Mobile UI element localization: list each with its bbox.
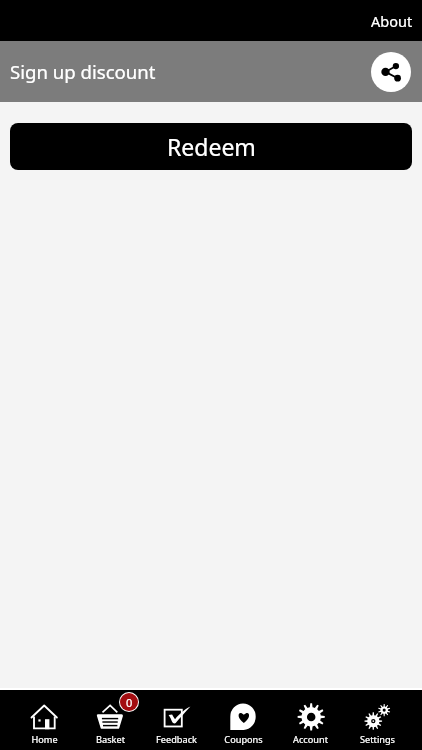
button[interactable]: Share bbox=[371, 52, 411, 92]
staticText: Coupons bbox=[224, 733, 263, 746]
button[interactable]: About bbox=[362, 2, 422, 40]
button[interactable]: Account bbox=[277, 690, 344, 750]
staticText: Redeem bbox=[167, 131, 256, 162]
button[interactable]: Feedback bbox=[143, 690, 210, 750]
staticText: Settings bbox=[360, 733, 395, 746]
staticText: 0 bbox=[126, 695, 133, 710]
staticText: About bbox=[371, 11, 413, 31]
button[interactable]: Home bbox=[11, 690, 77, 750]
staticText: Sign up discount bbox=[10, 59, 156, 84]
staticText: Home bbox=[31, 733, 58, 746]
staticText: Account bbox=[293, 733, 328, 746]
button[interactable]: Settings bbox=[344, 690, 411, 750]
staticText: Basket bbox=[96, 733, 125, 746]
staticText: Feedback bbox=[156, 733, 197, 746]
button[interactable]: 0 bbox=[77, 690, 143, 750]
button[interactable]: Redeem bbox=[10, 123, 412, 170]
button[interactable]: Coupons bbox=[210, 690, 277, 750]
